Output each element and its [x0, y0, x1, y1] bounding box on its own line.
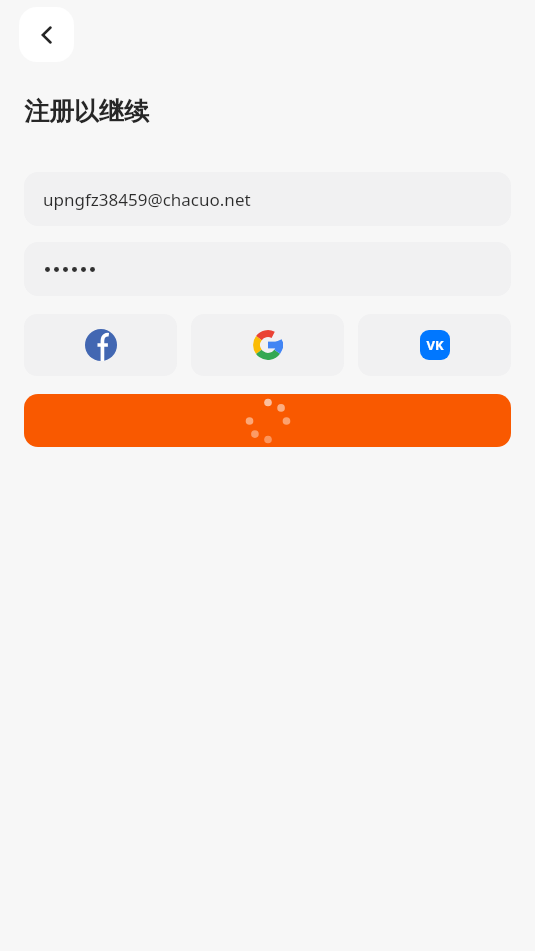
button[interactable]: Sign in with VK — [358, 314, 511, 376]
staticText: upngfz38459@chacuo.net — [43, 188, 251, 211]
button[interactable]: Back — [19, 7, 74, 62]
button[interactable]: upngfz38459@chacuo.net — [24, 172, 511, 226]
button[interactable] — [24, 242, 511, 296]
staticText: VK — [426, 336, 444, 354]
button[interactable]: Sign in with Facebook — [24, 314, 177, 376]
button[interactable]: Sign in with Google — [191, 314, 344, 376]
staticText: 注册以继续 — [24, 96, 149, 127]
button[interactable]: Sign up, loading — [24, 394, 511, 447]
